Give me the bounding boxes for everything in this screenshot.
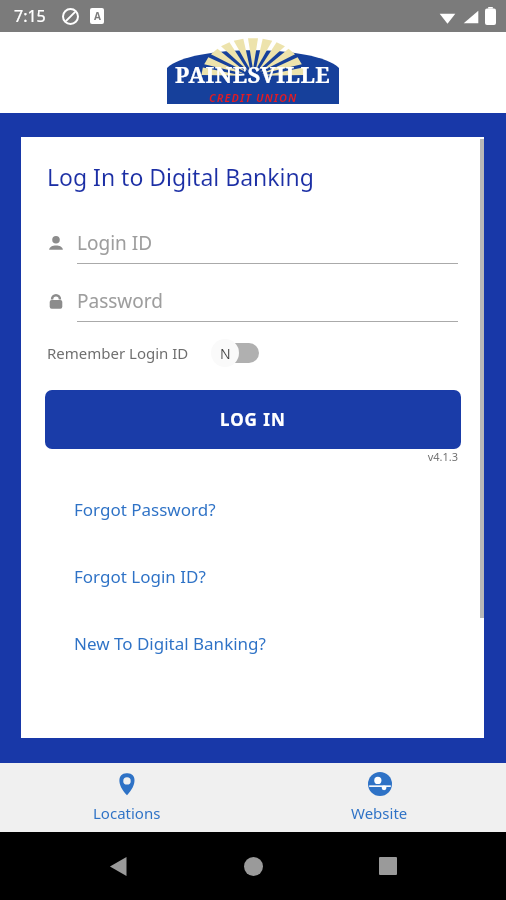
button[interactable]: New To Digital Banking? — [21, 632, 484, 655]
staticText: 7:15 — [14, 5, 46, 27]
button[interactable]: Back — [101, 849, 135, 883]
button[interactable]: Forgot Password? — [21, 498, 484, 521]
button[interactable]: Website — [253, 763, 506, 832]
staticText: Login ID — [77, 230, 153, 256]
staticText: Forgot Password? — [74, 498, 216, 521]
staticText: Password — [77, 288, 163, 314]
button[interactable]: N — [211, 338, 263, 368]
button[interactable]: Forgot Login ID? — [21, 565, 484, 588]
staticText: New To Digital Banking? — [74, 632, 266, 655]
button[interactable]: LOG IN — [45, 390, 461, 449]
staticText: Locations — [93, 803, 161, 823]
staticText: Forgot Login ID? — [74, 565, 206, 588]
button[interactable]: Locations — [0, 763, 253, 832]
button[interactable]: Home — [236, 849, 270, 883]
staticText: LOG IN — [220, 408, 286, 431]
staticText: Remember Login ID — [47, 343, 189, 363]
staticText: PAINESVILLE — [175, 59, 331, 89]
staticText: N — [220, 344, 231, 363]
staticText: A — [94, 9, 101, 23]
staticText: Website — [351, 803, 408, 823]
staticText: Log In to Digital Banking — [47, 161, 314, 192]
staticText: CREDIT UNION — [209, 90, 298, 105]
button[interactable]: Recents — [371, 849, 405, 883]
staticText: v4.1.3 — [21, 449, 458, 464]
